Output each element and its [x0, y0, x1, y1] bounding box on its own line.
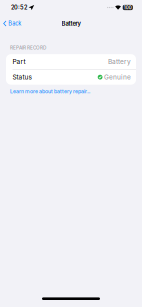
staticText: 20:52 [11, 4, 27, 11]
staticText: Battery [108, 58, 131, 66]
staticText: REPAIR RECORD [10, 45, 46, 51]
staticText: Status [12, 73, 31, 81]
staticText: Back [8, 20, 21, 27]
staticText: Part [12, 58, 25, 66]
staticText: 100 [124, 5, 132, 10]
staticText: Battery [61, 20, 80, 27]
staticText: Learn more about battery repair... [10, 88, 90, 94]
button[interactable]: Back [0, 17, 24, 30]
button[interactable]: Learn more about battery repair... [10, 87, 90, 95]
staticText: Genuine [104, 73, 131, 81]
